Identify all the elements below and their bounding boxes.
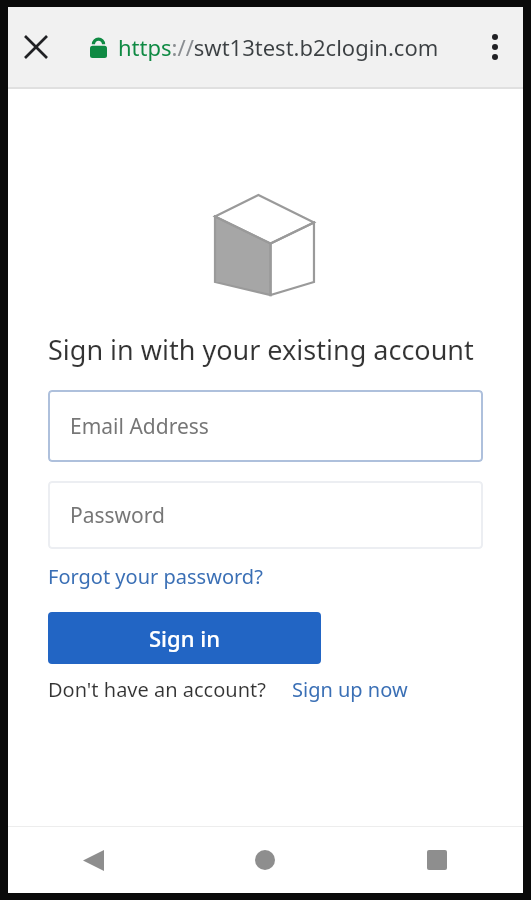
staticText: Password <box>70 501 165 530</box>
button[interactable]: Recent apps <box>351 827 523 893</box>
button[interactable]: Sign up now <box>292 676 408 703</box>
staticText: Forgot your password? <box>48 563 263 590</box>
staticText: Don't have an account? <box>48 676 266 703</box>
staticText: Email Address <box>70 412 209 441</box>
button[interactable]: Home <box>179 827 351 893</box>
button[interactable]: Back <box>8 827 179 893</box>
button[interactable]: Email Address <box>48 390 483 462</box>
button[interactable]: Forgot your password? <box>48 563 263 590</box>
staticText: https://swt13test.b2clogin.com <box>118 32 439 62</box>
staticText: Sign in with your existing account <box>48 331 474 368</box>
button[interactable]: Password <box>48 481 483 549</box>
button[interactable]: Sign in <box>48 612 321 664</box>
staticText: Sign in <box>149 623 220 653</box>
button[interactable]: More options <box>467 19 523 75</box>
button[interactable]: Close <box>8 19 64 75</box>
staticText: Sign up now <box>292 676 408 703</box>
